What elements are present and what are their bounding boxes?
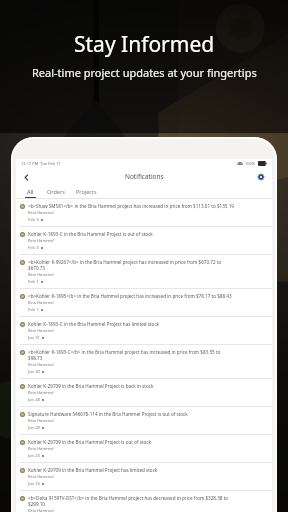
staticText: Bria Hammel — [28, 390, 54, 396]
staticText: <b>Shaw SM581</b> in the Bria Hammel pro… — [28, 203, 234, 209]
staticText: 100% — [245, 161, 256, 166]
staticText: Bria Hammel — [28, 238, 54, 244]
button[interactable]: <b>Kohler K-1893-C</b> in the Bria Hamme… — [16, 345, 272, 379]
staticText: Projects — [76, 188, 97, 195]
staticText: Feb 1 — [28, 279, 39, 285]
staticText: Jan 28 — [28, 397, 40, 403]
button[interactable]: All — [21, 185, 40, 198]
staticText: Bria Hammel — [28, 446, 54, 452]
staticText: Jan 28 — [28, 425, 40, 431]
staticText: Kohler K-29709 in the Bria Hammel Projec… — [28, 467, 158, 473]
staticText: Feb 3 — [28, 217, 39, 223]
staticText: $98.73 — [28, 355, 43, 361]
staticText: Bria Hammel — [28, 210, 54, 216]
staticText: Bria Hammel — [28, 508, 54, 512]
staticText: <b>Delta 9159TV-DST</b> in the Bria Hamm… — [28, 495, 229, 501]
button[interactable]: Back — [19, 170, 33, 184]
staticText: Kohler K-29709 in the Bria Hammel Projec… — [28, 439, 151, 445]
staticText: <b>Kohler K-99267</b> in the Bria Hammel… — [28, 259, 222, 265]
staticText: <b>Kohler K-1893-C</b> in the Bria Hamme… — [28, 349, 221, 355]
button[interactable]: <b>Shaw SM581</b> in the Bria Hammel pro… — [16, 199, 272, 227]
button[interactable]: Kohler K-1893-C in the Bria Hammel Proje… — [16, 317, 272, 345]
staticText: $299.10 — [28, 501, 45, 507]
staticText: Kohler K-1893-C in the Bria Hammel Proje… — [28, 321, 160, 327]
staticText: Bria Hammel — [28, 272, 54, 278]
button[interactable]: Projects — [72, 185, 101, 198]
button[interactable]: Kohler K-1893-C in the Bria Hammel Proje… — [16, 227, 272, 255]
staticText: Notifications — [125, 172, 164, 181]
staticText: Bria Hammel — [28, 362, 54, 368]
staticText: All — [27, 188, 34, 195]
staticText: Kohler K-1893-C in the Bria Hammel Proje… — [28, 231, 153, 237]
staticText: Stay Informed — [74, 30, 215, 59]
button[interactable]: <b>Kohler K-1895</b> in the Bria Hammel … — [16, 289, 272, 317]
button[interactable]: Kohler K-29709 in the Bria Hammel Projec… — [16, 379, 272, 407]
staticText: Orders — [47, 188, 65, 195]
button[interactable]: Orders — [43, 185, 69, 198]
staticText: Feb 1 — [28, 307, 39, 313]
staticText: Jan 30 — [28, 369, 40, 375]
staticText: Bria Hammel — [28, 418, 54, 424]
button[interactable]: Kohler K-29709 in the Bria Hammel Projec… — [16, 463, 272, 491]
button[interactable]: Settings — [254, 170, 268, 184]
staticText: Bria Hammel — [28, 300, 54, 306]
staticText: Jan 23 — [28, 453, 40, 459]
staticText: Feb 3 — [28, 245, 39, 251]
staticText: Signature Hardware 546678-114 in the Bri… — [28, 411, 188, 417]
staticText: Kohler K-29709 in the Bria Hammel Projec… — [28, 383, 154, 389]
staticText: Bria Hammel — [28, 474, 54, 480]
staticText: Jan 16 — [28, 481, 40, 487]
staticText: Real-time project updates at your finger… — [32, 65, 257, 80]
button[interactable]: <b>Delta 9159TV-DST</b> in the Bria Hamm… — [16, 491, 272, 512]
button[interactable]: Signature Hardware 546678-114 in the Bri… — [16, 407, 272, 435]
staticText: $670.73 — [28, 265, 45, 271]
button[interactable]: <b>Kohler K-99267</b> in the Bria Hammel… — [16, 255, 272, 289]
staticText: <b>Kohler K-1895</b> in the Bria Hammel … — [28, 293, 232, 299]
staticText: Jan 31 — [28, 335, 40, 341]
staticText: Bria Hammel — [28, 328, 54, 334]
staticText: 12:17 PM Tue Feb 11 — [21, 161, 61, 166]
button[interactable]: Kohler K-29709 in the Bria Hammel Projec… — [16, 435, 272, 463]
